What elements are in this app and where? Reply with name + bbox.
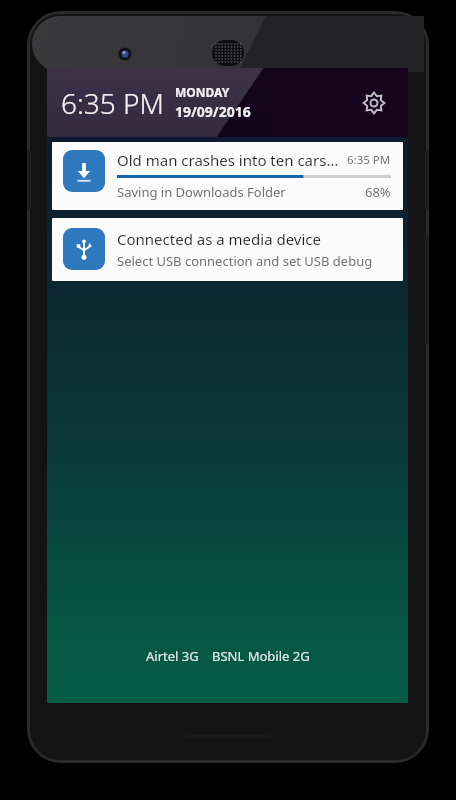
staticText: 6:35 PM	[61, 84, 164, 122]
staticText: 19/09/2016	[175, 102, 251, 121]
button[interactable]: Old man crashes into ten cars F..	[52, 142, 403, 210]
staticText: Select USB connection and set USB debug	[117, 252, 373, 270]
button[interactable]: Connected as a media device	[52, 218, 403, 281]
staticText: Connected as a media device	[117, 229, 322, 249]
staticText: MONDAY	[175, 84, 230, 100]
staticText: Old man crashes into ten cars F..	[117, 150, 341, 170]
staticText: BSNL Mobile 2G	[212, 647, 310, 665]
staticText: Saving in Downloads Folder	[117, 183, 286, 201]
staticText: Airtel 3G	[146, 647, 199, 665]
staticText: 68%	[365, 183, 391, 201]
button[interactable]: Settings	[354, 83, 394, 123]
staticText: 6:35 PM	[347, 152, 391, 168]
